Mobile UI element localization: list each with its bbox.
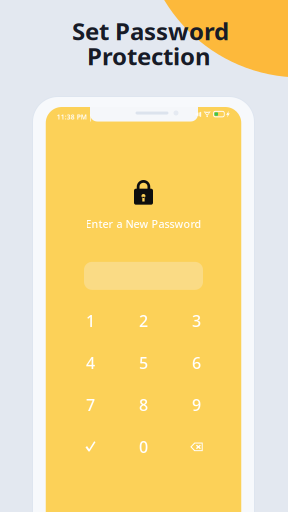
button[interactable]: 6 — [170, 342, 223, 384]
button[interactable]: 0 — [117, 426, 170, 468]
button[interactable]: 9 — [170, 384, 223, 426]
staticText: 1 — [86, 310, 95, 331]
button[interactable]: 1 — [64, 300, 117, 342]
staticText: Set Password — [72, 15, 229, 47]
staticText: 3 — [192, 310, 201, 331]
staticText: 11:38 PM | — [57, 113, 93, 121]
button[interactable]: Confirm password — [64, 426, 117, 468]
staticText: 5 — [139, 352, 148, 373]
staticText: 7 — [86, 394, 95, 415]
button[interactable]: 7 — [64, 384, 117, 426]
button[interactable]: 3 — [170, 300, 223, 342]
button[interactable]: 5 — [117, 342, 170, 384]
staticText: Protection — [87, 40, 211, 72]
staticText: 2 — [139, 310, 148, 331]
staticText: 8 — [139, 394, 148, 415]
button[interactable]: 2 — [117, 300, 170, 342]
button[interactable]: 8 — [117, 384, 170, 426]
staticText: 4 — [86, 352, 95, 373]
button[interactable]: 4 — [64, 342, 117, 384]
button[interactable]: Delete — [170, 426, 223, 468]
staticText: 6 — [192, 352, 201, 373]
staticText: 0 — [139, 436, 148, 457]
staticText: Enter a New Password — [85, 217, 201, 231]
staticText: 9 — [192, 394, 201, 415]
